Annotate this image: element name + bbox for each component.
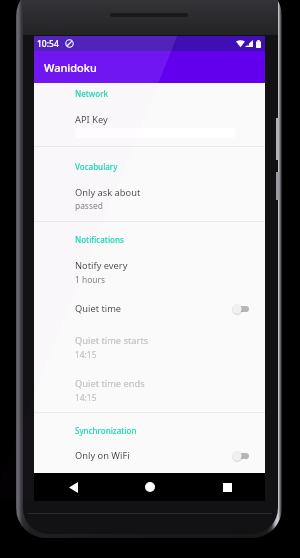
button[interactable] [34,255,265,289]
staticText: Wanidoku [44,60,97,75]
staticText: passed [75,200,103,211]
button[interactable] [34,373,265,407]
staticText: 1 hours [75,274,105,285]
staticText: API Key [75,113,108,126]
staticText: 10:54 [37,38,59,50]
staticText: Network [75,88,109,99]
staticText: Quiet time ends [75,377,145,390]
staticText: Synchronization [75,425,137,436]
staticText: Only ask about [75,186,141,199]
staticText: Notifications [75,234,124,245]
staticText: Quiet time starts [75,334,149,347]
button[interactable]: Toggle [227,298,255,320]
button[interactable] [34,181,265,215]
staticText: 14:15 [75,392,97,403]
button[interactable] [34,103,265,137]
button[interactable]: Recent apps [215,475,239,499]
button[interactable]: Toggle [227,445,255,467]
staticText: Quiet time [75,302,122,315]
button[interactable] [34,330,265,364]
staticText: Vocabulary [75,161,118,172]
staticText: Only on WiFi [75,449,130,462]
button[interactable] [34,441,265,471]
button[interactable]: Back [61,475,85,499]
staticText: Notify every [75,259,128,272]
button[interactable] [34,295,265,323]
button[interactable]: Home [138,475,162,499]
staticText: 14:15 [75,349,97,360]
